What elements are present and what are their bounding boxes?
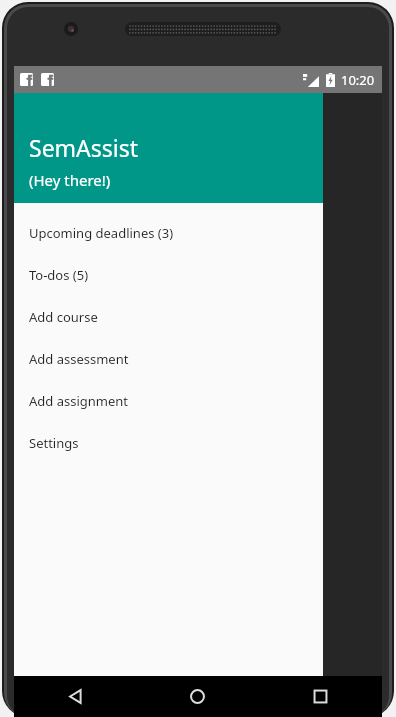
staticText: Upcoming deadlines (3) [29,224,174,242]
button[interactable]: Add assignment [14,380,323,422]
button[interactable]: Back [14,676,136,717]
staticText: Add assessment [29,350,129,368]
staticText: To-dos (5) [29,266,89,284]
button[interactable]: Add course [14,296,323,338]
button[interactable]: To-dos (5) [14,254,323,296]
button[interactable]: Home [136,676,259,717]
staticText: SemAssist [29,132,139,163]
button[interactable]: SemAssist [14,93,323,203]
staticText: (Hey there!) [29,170,111,190]
button[interactable]: Settings [14,422,323,464]
staticText: Settings [29,434,79,452]
staticText: Add course [29,308,98,326]
staticText: Add assignment [29,392,129,410]
button[interactable]: Recent apps [259,676,382,717]
button[interactable]: Upcoming deadlines (3) [14,212,323,254]
button[interactable]: Add assessment [14,338,323,380]
staticText: 10:20 [341,71,375,89]
